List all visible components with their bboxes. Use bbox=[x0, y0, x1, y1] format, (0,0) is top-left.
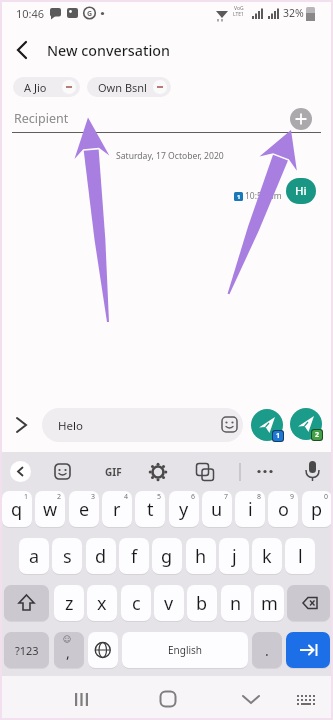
staticText: VoG bbox=[234, 5, 244, 12]
staticText: English bbox=[168, 643, 203, 657]
staticText: y bbox=[179, 497, 189, 522]
button[interactable] bbox=[152, 686, 184, 712]
button[interactable]: e bbox=[69, 491, 99, 527]
button[interactable]: s bbox=[52, 538, 82, 574]
staticText: 32% bbox=[283, 6, 304, 20]
button[interactable] bbox=[8, 36, 40, 64]
button[interactable] bbox=[251, 409, 283, 441]
staticText: 7 bbox=[224, 492, 229, 502]
button[interactable] bbox=[54, 463, 72, 481]
staticText: s bbox=[63, 544, 72, 569]
staticText: Recipient bbox=[14, 110, 69, 127]
button[interactable] bbox=[4, 585, 49, 621]
button[interactable] bbox=[66, 686, 98, 712]
button[interactable]: n bbox=[221, 585, 251, 621]
staticText: LTE1 bbox=[233, 11, 244, 18]
staticText: h bbox=[195, 544, 207, 569]
button[interactable]: u bbox=[202, 491, 232, 527]
staticText: i bbox=[248, 497, 253, 522]
button[interactable]: t bbox=[135, 491, 165, 527]
button[interactable]: y bbox=[169, 491, 199, 527]
button[interactable]: m bbox=[254, 585, 284, 621]
staticText: x bbox=[97, 591, 107, 616]
button[interactable]: k bbox=[252, 538, 282, 574]
button[interactable]: v bbox=[154, 585, 184, 621]
button[interactable]: a bbox=[19, 538, 49, 574]
staticText: k bbox=[262, 544, 272, 569]
button[interactable]: h bbox=[186, 538, 216, 574]
staticText: 4 bbox=[124, 492, 129, 502]
button[interactable] bbox=[10, 461, 31, 482]
staticText: g bbox=[161, 544, 173, 569]
button[interactable]: d bbox=[86, 538, 116, 574]
button[interactable]: r bbox=[102, 491, 132, 527]
staticText: 1 bbox=[237, 193, 241, 201]
staticText: 9 bbox=[290, 492, 295, 502]
button[interactable]: . bbox=[252, 632, 282, 668]
button[interactable]: b bbox=[187, 585, 217, 621]
staticText: 2 bbox=[57, 492, 62, 502]
staticText: c bbox=[132, 591, 141, 616]
staticText: Own Bsnl bbox=[98, 80, 147, 95]
staticText: d bbox=[95, 544, 107, 569]
button[interactable]: c bbox=[121, 585, 151, 621]
button[interactable]: GIF bbox=[100, 464, 126, 480]
staticText: m bbox=[261, 591, 278, 616]
button[interactable] bbox=[88, 632, 118, 668]
button[interactable] bbox=[290, 408, 322, 440]
button[interactable] bbox=[235, 686, 267, 712]
button[interactable] bbox=[196, 463, 214, 481]
staticText: f bbox=[131, 544, 138, 569]
button[interactable]: A Jio bbox=[13, 77, 80, 97]
button[interactable]: Helo bbox=[42, 408, 243, 442]
button[interactable] bbox=[290, 108, 312, 130]
staticText: o bbox=[278, 497, 289, 522]
button[interactable]: x bbox=[87, 585, 117, 621]
staticText: Hi bbox=[295, 183, 307, 199]
staticText: a bbox=[29, 544, 40, 569]
staticText: GIF bbox=[105, 465, 122, 479]
staticText: 1 bbox=[276, 431, 281, 441]
button[interactable]: ☺ bbox=[54, 632, 84, 668]
staticText: 2 bbox=[315, 430, 320, 440]
staticText: j bbox=[232, 544, 237, 569]
button[interactable]: Hi bbox=[286, 178, 316, 204]
button[interactable] bbox=[148, 462, 168, 482]
button[interactable]: f bbox=[119, 538, 149, 574]
staticText: 8 bbox=[257, 492, 262, 502]
button[interactable] bbox=[286, 632, 330, 668]
staticText: t bbox=[147, 497, 154, 522]
staticText: ?123 bbox=[15, 643, 39, 658]
staticText: Helo bbox=[58, 418, 83, 434]
staticText: r bbox=[113, 497, 121, 522]
staticText: 10:46 bbox=[16, 6, 45, 21]
button[interactable]: g bbox=[152, 538, 182, 574]
button[interactable]: i bbox=[235, 491, 265, 527]
button[interactable]: p bbox=[302, 491, 332, 527]
button[interactable]: z bbox=[54, 585, 84, 621]
staticText: 6 bbox=[191, 492, 196, 502]
staticText: , bbox=[66, 643, 70, 662]
button[interactable]: j bbox=[219, 538, 249, 574]
staticText: ☺ bbox=[63, 635, 72, 644]
staticText: 10:52 am bbox=[245, 190, 282, 202]
staticText: Saturday, 17 October, 2020 bbox=[116, 150, 224, 162]
staticText: 1 bbox=[24, 492, 29, 502]
button[interactable]: q bbox=[2, 491, 32, 527]
staticText: z bbox=[65, 591, 74, 616]
staticText: b bbox=[196, 591, 208, 616]
button[interactable]: English bbox=[122, 632, 248, 668]
button[interactable]: Own Bsnl bbox=[87, 77, 171, 97]
button[interactable]: w bbox=[35, 491, 65, 527]
button[interactable]: o bbox=[268, 491, 298, 527]
staticText: q bbox=[11, 497, 23, 522]
button[interactable] bbox=[290, 688, 320, 712]
staticText: 5 bbox=[157, 492, 162, 502]
button[interactable]: l bbox=[285, 538, 315, 574]
button[interactable]: ?123 bbox=[4, 632, 49, 668]
staticText: G bbox=[87, 9, 93, 19]
staticText: New conversation bbox=[47, 41, 170, 60]
staticText: . bbox=[265, 641, 269, 660]
button[interactable] bbox=[287, 585, 330, 621]
staticText: n bbox=[230, 591, 242, 616]
